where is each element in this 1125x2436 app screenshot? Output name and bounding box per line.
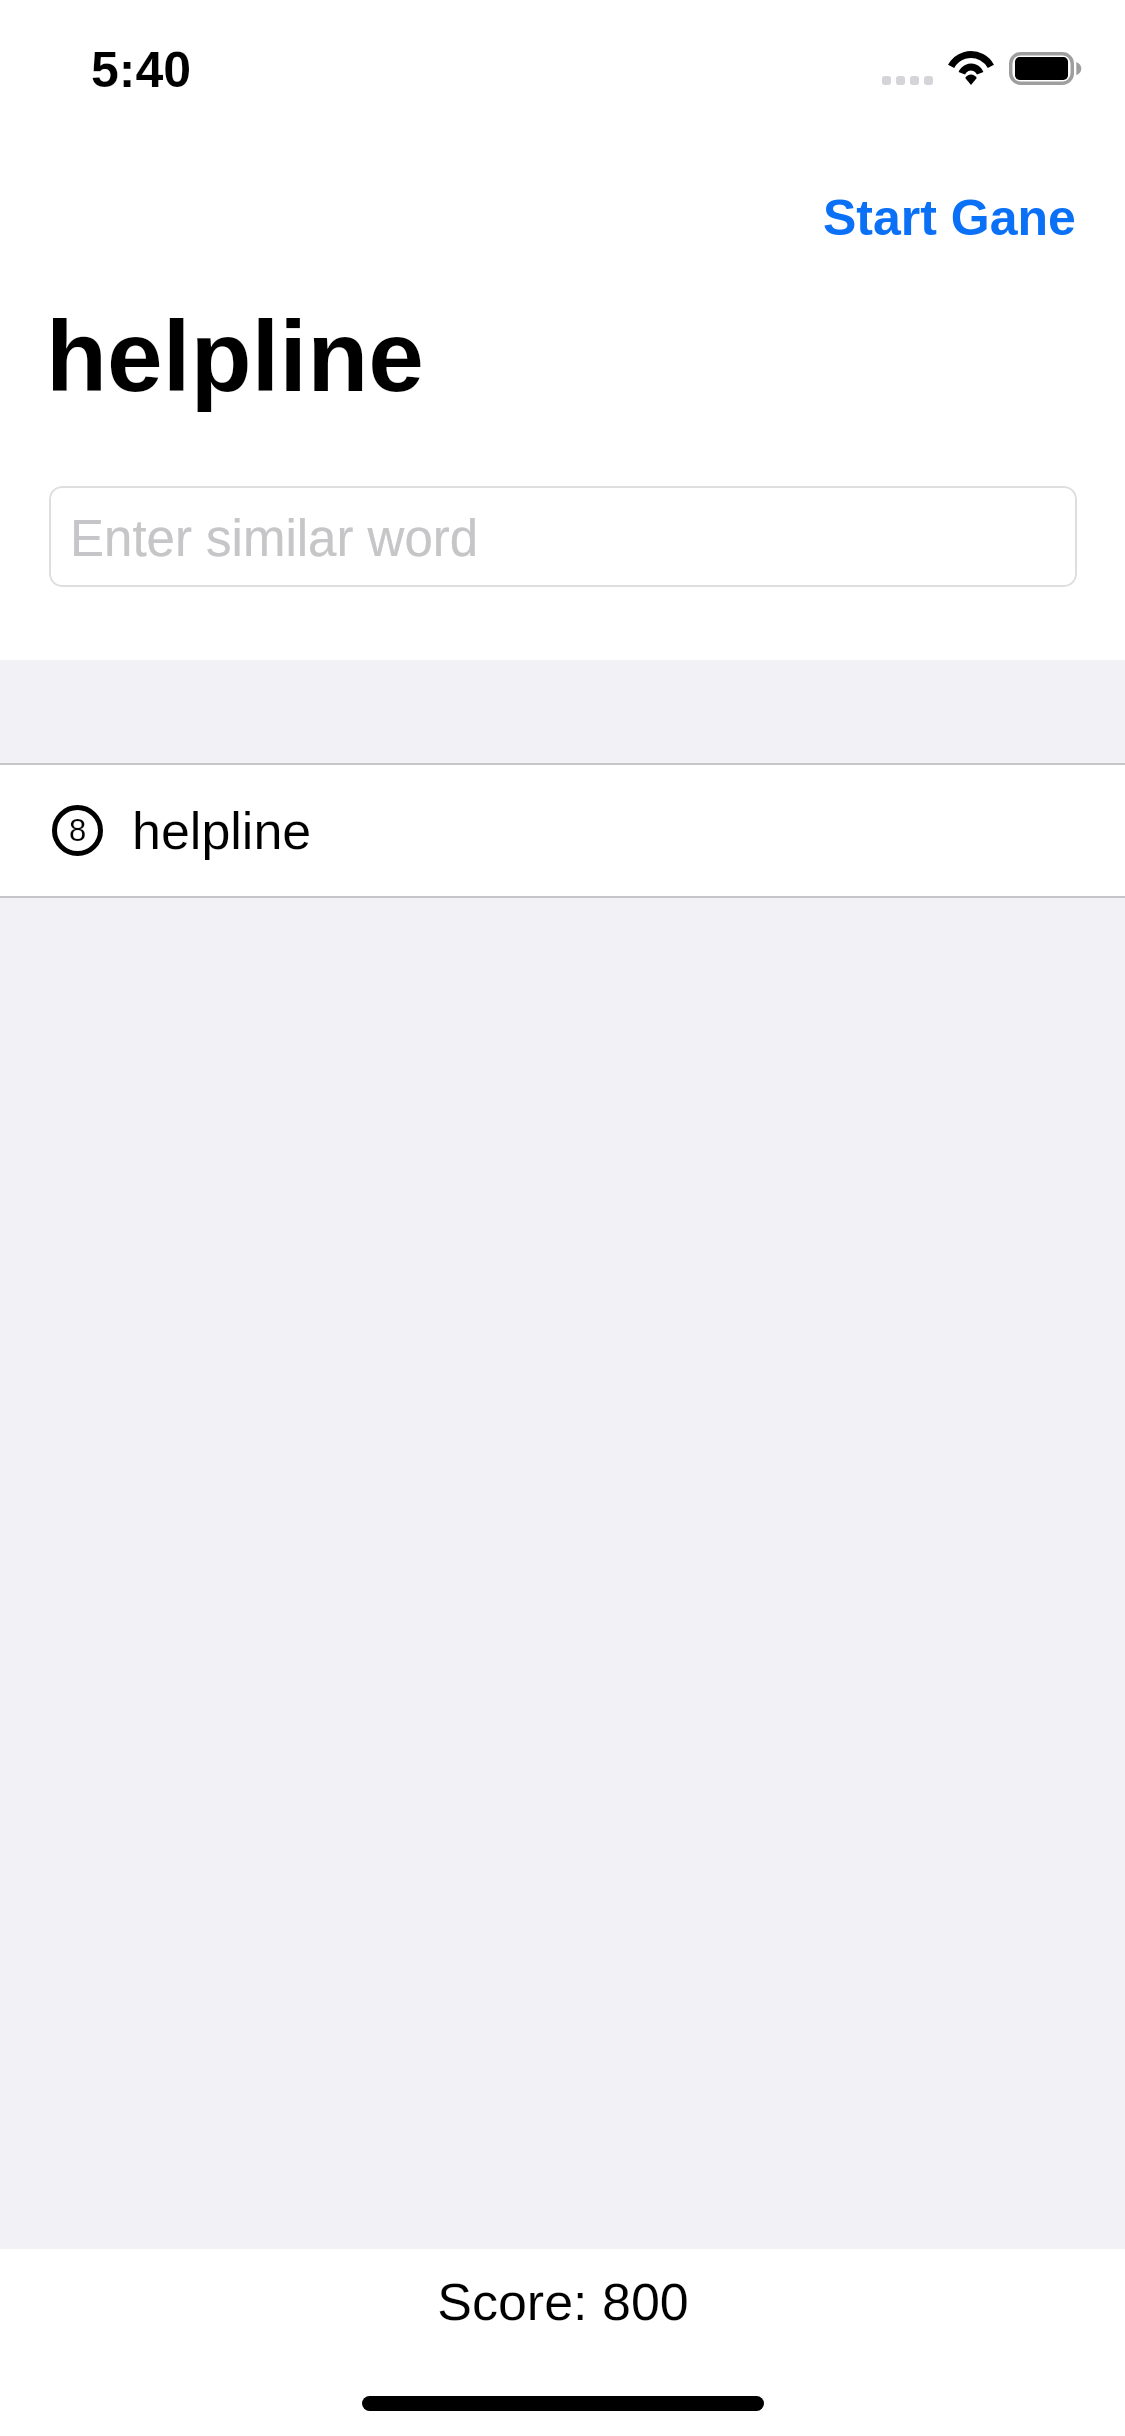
staticText: helpline (132, 802, 312, 860)
staticText: Score: 800 (437, 2273, 689, 2331)
staticText: helpline (46, 300, 424, 412)
button[interactable]: 8 (0, 765, 1125, 896)
other: Cellular signal (882, 76, 933, 85)
staticText: Start Gane (823, 190, 1076, 246)
staticText: 5:40 (91, 42, 192, 98)
button[interactable]: Enter similar word (49, 486, 1077, 587)
other: Battery (1009, 52, 1083, 85)
button[interactable]: Start Gane (783, 164, 1116, 272)
staticText: 8 (69, 813, 87, 848)
other: Wi-Fi (948, 51, 994, 85)
staticText: Enter similar word (70, 510, 479, 567)
